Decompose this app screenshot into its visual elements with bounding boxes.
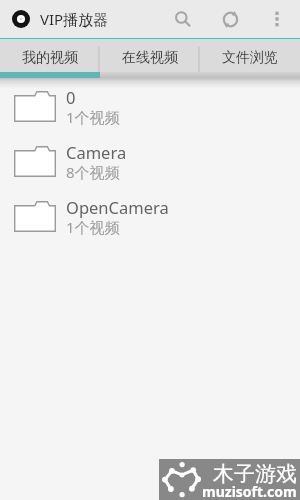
button[interactable]: 我的视频 <box>0 39 100 78</box>
staticText: 8个视频 <box>66 162 120 182</box>
staticText: OpenCamera <box>66 196 169 218</box>
staticText: 1个视频 <box>66 107 120 127</box>
staticText: 木子游戏 <box>213 461 297 487</box>
staticText: 在线视频 <box>122 49 178 67</box>
button[interactable]: 文件浏览 <box>200 39 300 78</box>
staticText: 文件浏览 <box>222 49 278 67</box>
button[interactable]: Camera <box>0 134 300 189</box>
staticText: 我的视频 <box>22 49 78 67</box>
button[interactable]: Refresh <box>201 0 260 38</box>
button[interactable]: 0 <box>0 79 300 134</box>
button[interactable]: Search <box>164 0 201 38</box>
staticText: Camera <box>66 141 127 163</box>
staticText: 1个视频 <box>66 217 120 237</box>
staticText: 0 <box>66 86 76 108</box>
button[interactable]: More options <box>260 0 294 38</box>
staticText: VIP播放器 <box>40 9 109 29</box>
button[interactable]: 在线视频 <box>100 39 200 78</box>
staticText: muzisoft.com <box>202 482 297 500</box>
button[interactable]: OpenCamera <box>0 189 300 244</box>
